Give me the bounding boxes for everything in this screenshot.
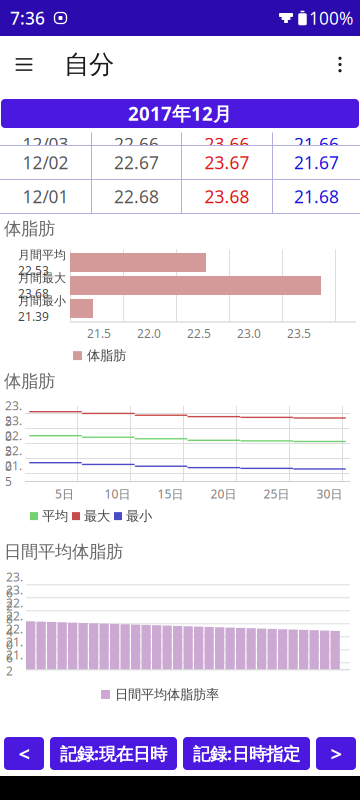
staticText: 22.66 — [114, 132, 159, 155]
staticText: 21.66 — [294, 132, 339, 155]
staticText: 5日 — [55, 486, 74, 502]
button[interactable]: その他のオプション — [318, 40, 360, 88]
button[interactable]: 前へ — [4, 737, 44, 770]
staticText: 21.67 — [294, 151, 339, 174]
staticText: 23.0 — [5, 413, 22, 444]
staticText: 12/01 — [22, 185, 68, 208]
staticText: 12/02 — [22, 151, 68, 174]
staticText: 7:36 — [10, 6, 45, 29]
staticText: > — [330, 740, 341, 767]
staticText: 22.0 — [5, 443, 22, 474]
staticText: 月間最大 23.68 — [18, 270, 66, 301]
staticText: 自分 — [64, 49, 114, 80]
staticText: 23.0 — [237, 325, 261, 341]
staticText: 20日 — [210, 486, 236, 502]
staticText: 体脂肪 — [87, 347, 126, 364]
staticText: 22.5 — [5, 428, 22, 459]
button[interactable]: メニュー — [0, 40, 48, 88]
staticText: 15日 — [157, 486, 183, 502]
staticText: 21.5 — [87, 325, 111, 341]
staticText: 23.66 — [204, 132, 249, 155]
staticText: 2017年12月 — [128, 101, 232, 126]
staticText: 月間平均 22.53 — [18, 247, 66, 278]
staticText: 23.68 — [204, 185, 249, 208]
staticText: 12/03 — [22, 132, 68, 155]
staticText: 体脂肪 — [4, 371, 55, 392]
staticText: 100% — [309, 6, 353, 29]
staticText: 30日 — [316, 486, 342, 502]
staticText: 記録:現在日時 — [60, 742, 167, 765]
staticText: 21.68 — [294, 185, 339, 208]
staticText: 10日 — [104, 486, 130, 502]
staticText: 23.6 — [6, 569, 23, 601]
button[interactable]: 記録:日時指定 — [183, 737, 310, 770]
button[interactable]: 次へ — [316, 737, 356, 770]
staticText: 日間平均体脂肪率 — [115, 686, 219, 703]
staticText: 21.6 — [6, 634, 23, 666]
staticText: 21.5 — [5, 458, 22, 489]
staticText: 22.68 — [114, 185, 159, 208]
staticText: 22.67 — [114, 151, 159, 174]
staticText: 最大 — [84, 508, 110, 524]
staticText: 22.0 — [6, 621, 23, 653]
staticText: 記録:日時指定 — [193, 742, 300, 765]
staticText: 日間平均体脂肪 — [4, 541, 123, 562]
staticText: 21.2 — [6, 647, 23, 679]
staticText: 最小 — [126, 508, 152, 524]
staticText: 平均 — [42, 508, 68, 524]
staticText: < — [18, 740, 29, 767]
staticText: 月間最小 21.39 — [18, 293, 66, 324]
button[interactable]: 2017年12月 — [1, 99, 359, 128]
staticText: 23.67 — [204, 151, 249, 174]
staticText: 22.8 — [6, 595, 23, 627]
staticText: 22.0 — [137, 325, 161, 341]
staticText: 22.4 — [6, 608, 23, 640]
staticText: 25日 — [263, 486, 289, 502]
staticText: 22.5 — [187, 325, 211, 341]
button[interactable]: 記録:現在日時 — [50, 737, 177, 770]
staticText: 23.5 — [287, 325, 311, 341]
staticText: 23.5 — [5, 398, 22, 429]
staticText: 体脂肪 — [4, 218, 55, 239]
staticText: 23.2 — [6, 582, 23, 614]
